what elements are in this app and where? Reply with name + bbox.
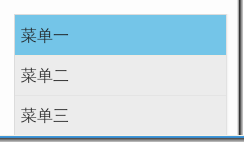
button[interactable]: 菜单一 bbox=[15, 15, 227, 55]
staticText: 菜单二 bbox=[21, 66, 69, 86]
button[interactable]: 菜单三 bbox=[15, 95, 227, 135]
staticText: 菜单三 bbox=[21, 106, 69, 126]
staticText: 菜单一 bbox=[21, 26, 69, 46]
button[interactable]: 菜单二 bbox=[15, 55, 227, 95]
